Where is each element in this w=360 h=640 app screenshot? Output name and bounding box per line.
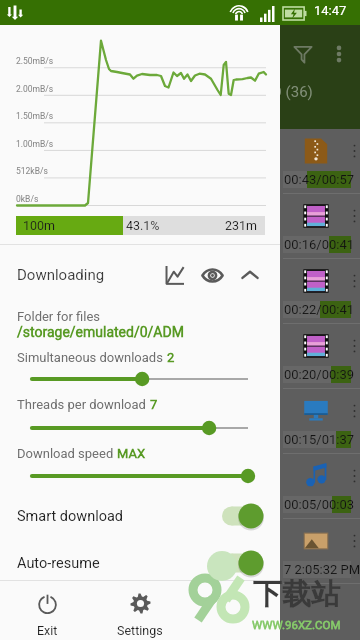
button[interactable]: 100m	[16, 216, 265, 235]
staticText: /storage/emulated/0/ADM	[17, 324, 184, 340]
button[interactable]: 00:22/00:41	[0, 259, 360, 324]
button[interactable]: Simultaneous downloads	[0, 348, 280, 392]
staticText: Downloading	[17, 266, 105, 284]
button[interactable]: More options	[324, 39, 354, 69]
staticText: Smart download	[17, 508, 124, 525]
staticText: WWW.96XZ.COM	[252, 618, 341, 631]
staticText: 100m	[23, 218, 56, 233]
staticText: 2.50mB/s	[16, 56, 54, 66]
staticText: Simultaneous downloads	[17, 350, 167, 365]
button[interactable]: Smart download	[0, 493, 280, 539]
staticText: 7 2:05:32 PM	[284, 562, 360, 577]
button[interactable]: 00:43/00:57	[0, 129, 360, 194]
button[interactable]: Exit	[0, 581, 94, 640]
button[interactable]: 00:16/00:41	[0, 194, 360, 259]
staticText: 下载站	[253, 576, 340, 613]
staticText: 7	[150, 397, 158, 412]
button[interactable]: Threads per download	[0, 395, 280, 439]
staticText: 00:15/01:37	[284, 432, 355, 447]
staticText: Download speed	[17, 446, 117, 461]
staticText: 231m	[225, 218, 258, 233]
staticText: 0kB/s	[16, 194, 39, 204]
button[interactable]: 00:05/00:03	[0, 454, 360, 519]
button[interactable]: 00:15/01:37	[0, 389, 360, 454]
button[interactable]: Speed graph	[155, 256, 193, 294]
staticText: 2	[167, 350, 175, 365]
button[interactable]: 7 2:05:32 PM	[0, 519, 360, 584]
button[interactable]: Filter	[288, 39, 318, 69]
button[interactable]: Show hidden	[193, 256, 231, 294]
staticText: 00:43/00:57	[284, 172, 355, 187]
staticText: 512kB/s	[16, 166, 48, 176]
staticText: MAX	[117, 446, 146, 461]
staticText: Settings	[117, 623, 163, 638]
button[interactable]: Settings	[94, 581, 186, 640]
staticText: 00:16/00:41	[284, 237, 355, 252]
staticText: Auto-resume	[17, 555, 100, 572]
button[interactable]: Downloading	[0, 253, 280, 297]
staticText: Folder for files	[17, 309, 101, 324]
staticText: 1.00mB/s	[16, 139, 54, 149]
staticText: 2.00mB/s	[16, 84, 54, 94]
staticText: 43.1%	[126, 218, 160, 233]
staticText: 00:20/00:39	[284, 367, 355, 382]
staticText: Exit	[37, 623, 58, 638]
button[interactable]: 00:20/00:39	[0, 324, 360, 389]
staticText: 1.50mB/s	[16, 111, 54, 121]
staticText: Threads per download	[17, 397, 150, 412]
staticText: 00:22/00:41	[284, 302, 355, 317]
staticText: 00:05/00:03	[284, 497, 355, 512]
button[interactable]: Collapse	[231, 256, 269, 294]
button[interactable]: Download speed	[0, 444, 280, 488]
staticText: D (36)	[272, 83, 313, 101]
button[interactable]: Auto-resume	[0, 540, 280, 586]
staticText: 14:47	[314, 3, 347, 18]
button[interactable]: Folder for files	[0, 309, 280, 340]
